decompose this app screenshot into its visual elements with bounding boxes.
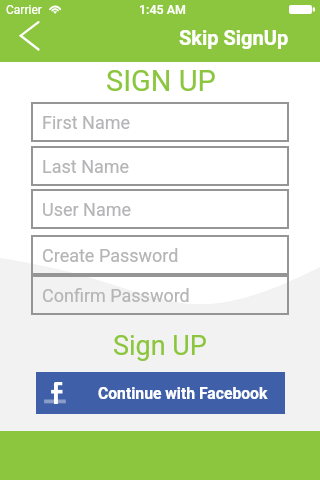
staticText: Skip SignUp [179, 26, 289, 49]
staticText: Carrier [6, 3, 42, 17]
staticText: SIGN UP [106, 64, 216, 98]
staticText: 1:45 AM [139, 2, 186, 17]
staticText: Create Password [42, 245, 179, 266]
button[interactable]: Continue with Facebook [36, 372, 285, 414]
staticText: Continue with Facebook [98, 384, 268, 402]
button[interactable]: Sign UP [113, 330, 207, 362]
button[interactable]: Create Password [31, 235, 289, 275]
staticText: User Name [42, 199, 132, 220]
button[interactable]: User Name [31, 189, 289, 229]
button[interactable]: Skip SignUp [179, 26, 289, 49]
button[interactable]: Back [10, 20, 48, 54]
staticText: Confirm Password [42, 285, 190, 306]
staticText: First Name [42, 112, 131, 133]
button[interactable]: Last Name [31, 146, 289, 186]
staticText: Sign UP [113, 330, 207, 362]
button[interactable]: Confirm Password [31, 275, 289, 315]
staticText: Last Name [42, 156, 130, 177]
button[interactable]: First Name [31, 102, 289, 142]
